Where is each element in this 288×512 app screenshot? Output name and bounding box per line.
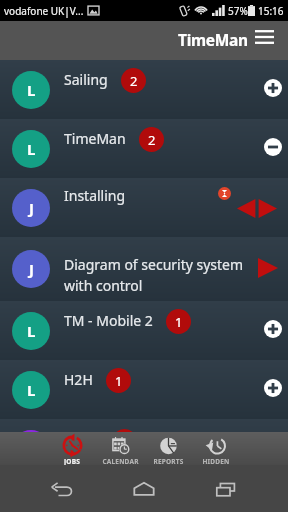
staticText: L	[27, 380, 36, 400]
staticText: with control	[64, 276, 143, 295]
button[interactable]: Recents	[206, 469, 246, 509]
staticText: J	[29, 259, 34, 279]
staticText: CALENDAR	[102, 457, 139, 465]
button[interactable]: Rewind	[236, 187, 278, 229]
button[interactable]: REPORTS	[144, 432, 192, 465]
button[interactable]: Home	[124, 469, 164, 509]
button[interactable]: Play job	[247, 247, 288, 289]
staticText: Diagram of security system	[64, 255, 244, 274]
staticText: L	[27, 321, 36, 341]
staticText: TimeMan	[64, 129, 126, 148]
staticText: L	[27, 139, 36, 159]
button[interactable]: Start job	[252, 67, 288, 109]
button[interactable]: JOBS	[48, 432, 96, 465]
button[interactable]: L	[0, 301, 288, 360]
staticText: vodafone UK|V...	[4, 4, 84, 18]
staticText: 2	[130, 72, 138, 90]
staticText: Sailing	[64, 70, 108, 89]
staticText: Installing	[64, 186, 126, 205]
button[interactable]: J	[0, 237, 288, 301]
staticText: 2	[148, 131, 156, 149]
staticText: L	[27, 80, 36, 100]
button[interactable]: L	[0, 60, 288, 119]
staticText: 1	[175, 313, 183, 331]
staticText: 1	[115, 372, 123, 390]
staticText: 57%	[228, 4, 248, 18]
button[interactable]: L	[0, 119, 288, 178]
button[interactable]: J	[0, 178, 288, 237]
staticText: H2H	[64, 370, 93, 389]
button[interactable]: Start job	[252, 367, 288, 409]
button[interactable]: Start job	[252, 308, 288, 350]
staticText: TM - Mobile 2	[64, 311, 153, 330]
button[interactable]: HIDDEN	[192, 432, 240, 465]
staticText: 15:16	[258, 4, 284, 18]
staticText: JOBS	[64, 457, 80, 465]
button[interactable]: L	[0, 419, 288, 432]
staticText: HIDDEN	[202, 457, 230, 465]
staticText: TimeMan	[178, 29, 248, 50]
button[interactable]: Stop job	[252, 126, 288, 168]
button[interactable]: Back	[42, 469, 82, 509]
button[interactable]: Menu	[251, 24, 277, 50]
button[interactable]: CALENDAR	[96, 432, 144, 465]
button[interactable]: L	[0, 360, 288, 419]
staticText: J	[29, 198, 34, 218]
staticText: REPORTS	[153, 457, 184, 465]
